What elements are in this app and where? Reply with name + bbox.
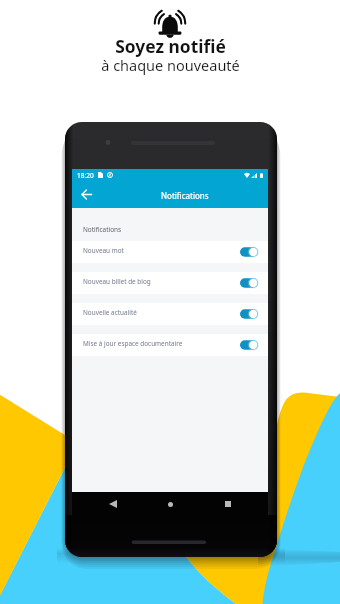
staticText: Nouvelle actualité (83, 308, 137, 317)
staticText: Notifications (83, 225, 122, 234)
staticText: Mise à jour espace documentaire (83, 339, 183, 348)
staticText: à chaque nouveauté (101, 55, 240, 75)
button[interactable]: Back (74, 182, 98, 206)
staticText: Notifications (161, 190, 209, 201)
button[interactable]: Home (160, 494, 180, 514)
staticText: Nouveau mot (83, 246, 124, 255)
button[interactable]: Mise à jour espace documentaire (72, 334, 268, 356)
button[interactable]: Recent apps (218, 494, 238, 514)
staticText: Soyez notifié (115, 34, 226, 58)
button[interactable]: Nouveau billet de blog (72, 272, 268, 294)
staticText: Nouveau billet de blog (83, 277, 151, 286)
button[interactable]: Back (103, 494, 123, 514)
button[interactable]: Nouvelle actualité (72, 303, 268, 325)
button[interactable]: Nouveau mot (72, 241, 268, 263)
staticText: 18:20 (77, 171, 94, 180)
